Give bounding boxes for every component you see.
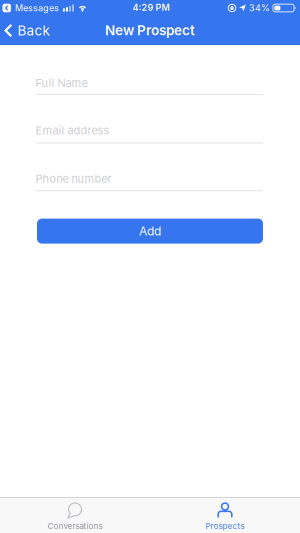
staticText: New Prospect [105,22,195,38]
staticText: Email address [35,124,109,137]
button[interactable]: Conversations [0,498,150,533]
staticText: 4:29 PM [132,2,169,13]
staticText: Full Name [35,76,87,89]
staticText: Back [17,23,49,38]
staticText: Messages [15,3,59,13]
button[interactable]: Back [0,16,70,45]
staticText: Prospects [205,521,244,531]
staticText: Phone number [35,172,111,185]
staticText: 34% [249,3,270,13]
staticText: Conversations [47,521,102,531]
staticText: Add [139,224,161,238]
button[interactable]: Prospects [150,498,300,533]
button[interactable]: Add [37,219,263,244]
